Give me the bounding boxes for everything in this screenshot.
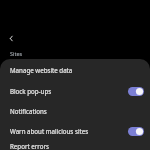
button[interactable]: Manage website data: [0, 59, 150, 81]
button[interactable]: Toggle: [128, 87, 144, 96]
staticText: Block pop-ups: [10, 87, 128, 95]
button[interactable]: Navigate up: [4, 31, 18, 45]
staticText: Report errors: [10, 142, 128, 150]
staticText: Manage website data: [10, 66, 128, 74]
button[interactable]: Toggle: [128, 127, 144, 136]
button[interactable]: Notifications: [0, 101, 150, 121]
staticText: Warn about malicious sites: [10, 127, 128, 135]
button[interactable]: Report errors: [0, 141, 150, 150]
button[interactable]: Block pop-ups: [0, 81, 150, 101]
button[interactable]: Warn about malicious sites: [0, 121, 150, 141]
staticText: Sites: [10, 50, 23, 57]
staticText: Notifications: [10, 107, 128, 115]
